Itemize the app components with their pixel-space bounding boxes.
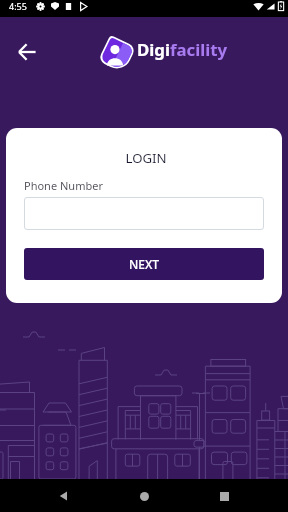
staticText: facility <box>170 38 228 61</box>
staticText: Phone Number <box>24 178 103 193</box>
button[interactable]: NEXT <box>24 248 264 280</box>
button[interactable]: Home <box>128 480 160 512</box>
staticText: LOGIN <box>8 149 282 167</box>
staticText: NEXT <box>129 256 160 272</box>
button[interactable] <box>24 197 264 230</box>
button[interactable]: Recents <box>208 480 240 512</box>
staticText: 4:55 <box>9 0 27 12</box>
button[interactable]: Back <box>48 480 80 512</box>
staticText: Digi <box>137 38 170 61</box>
button[interactable]: Back <box>13 38 41 66</box>
